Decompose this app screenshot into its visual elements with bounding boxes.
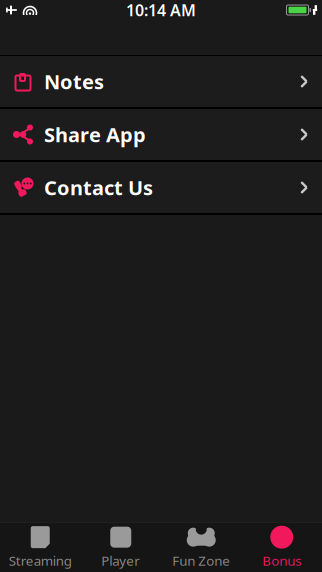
- staticText: Notes: [44, 68, 104, 95]
- staticText: Player: [101, 552, 140, 569]
- staticText: Bonus: [262, 552, 301, 569]
- staticText: Share App: [44, 121, 146, 148]
- button[interactable]: Fun Zone: [161, 523, 241, 571]
- button[interactable]: Notes: [0, 56, 322, 107]
- button[interactable]: Bonus: [241, 523, 322, 571]
- staticText: Streaming: [9, 552, 72, 569]
- button[interactable]: Player: [80, 523, 161, 571]
- button[interactable]: Share App: [0, 109, 322, 160]
- staticText: Contact Us: [44, 174, 153, 201]
- button[interactable]: Contact Us: [0, 162, 322, 213]
- staticText: 10:14 AM: [126, 0, 196, 21]
- button[interactable]: Streaming: [0, 523, 80, 571]
- staticText: Fun Zone: [172, 552, 230, 569]
